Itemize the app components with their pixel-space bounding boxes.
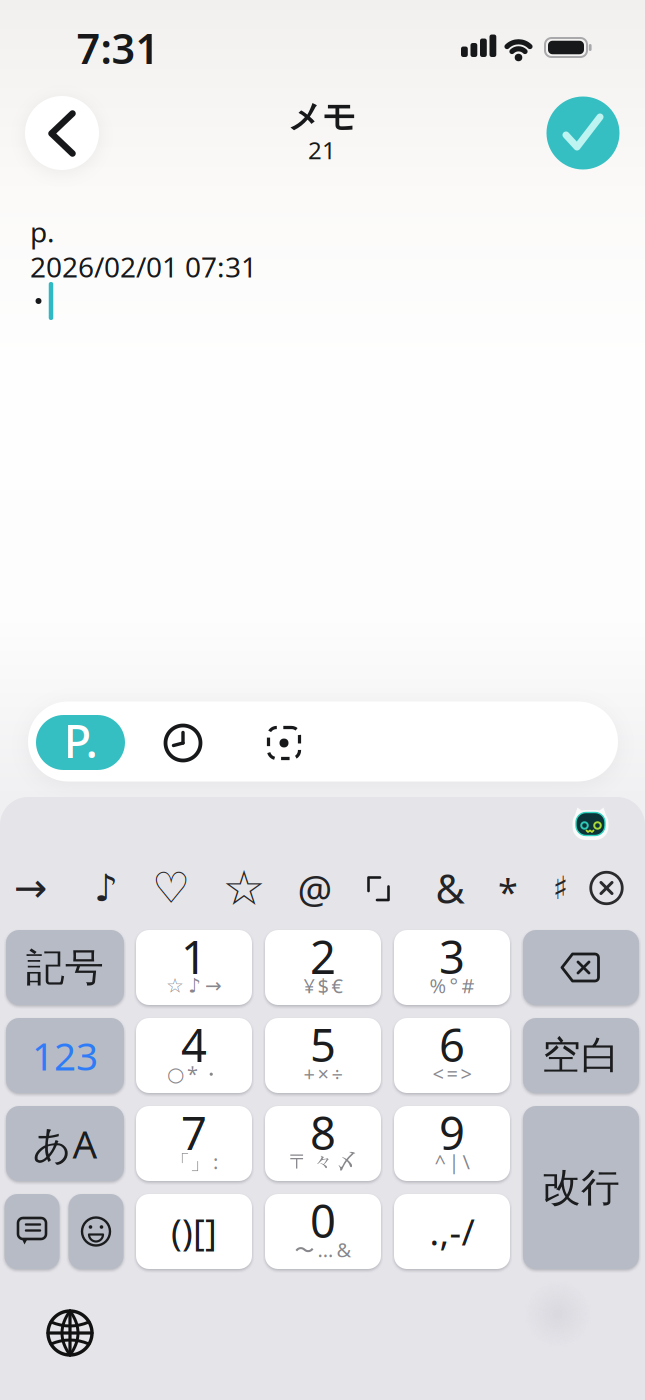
staticText: ☆ ♪ → [166,974,222,997]
button[interactable]: .,-/ [394,1194,510,1269]
button[interactable]: Scan [262,721,306,765]
button[interactable]: ♡ [149,866,193,910]
button[interactable]: * [486,869,530,913]
staticText: ¥ $ € [303,972,342,999]
button[interactable]: History [161,721,205,765]
button[interactable]: 3 [394,930,510,1005]
staticText: 6 [439,1014,465,1075]
staticText: 改行 [542,1164,620,1211]
staticText: p. [30,213,55,250]
staticText: 123 [32,1030,98,1081]
staticText: 「」 : [170,1148,218,1175]
button[interactable]: ()[] [136,1194,252,1269]
staticText: ♯ [552,870,567,906]
staticText: ○ * ・ [167,1060,221,1087]
staticText: .,-/ [429,1208,474,1255]
button[interactable]: Done [546,96,619,169]
button[interactable]: @ [293,866,337,910]
staticText: 〜 … & [294,1236,351,1263]
staticText: 記号 [26,944,104,991]
button[interactable]: 1 [136,930,252,1005]
staticText: ☆ [222,861,265,915]
staticText: 2026/02/01 07:31 [30,248,257,285]
staticText: + × ÷ [303,1060,342,1087]
button[interactable]: Emoji [68,1194,123,1269]
button[interactable]: 4 [136,1018,252,1093]
button[interactable]: ♯ [538,866,582,910]
staticText: < = > [432,1060,471,1087]
button[interactable]: Delete [523,930,639,1005]
staticText: ♪ [94,867,118,909]
button[interactable]: 空白 [523,1018,639,1093]
staticText: ()[] [171,1208,217,1255]
staticText: 3 [439,926,465,987]
button[interactable]: 2 [265,930,381,1005]
staticText: あA [32,1118,97,1169]
button[interactable]: 改行 [523,1106,639,1269]
button[interactable]: Clipboard [4,1194,59,1269]
staticText: 5 [310,1014,336,1075]
button[interactable]: ♪ [84,866,128,910]
staticText: 7 [181,1102,207,1163]
button[interactable]: P. [36,715,125,770]
button[interactable]: あA [6,1106,124,1181]
button[interactable]: Back [25,96,99,170]
staticText: 9 [439,1102,465,1163]
staticText: 1 [181,926,207,987]
button[interactable]: Close [586,868,626,908]
button[interactable]: 8 [265,1106,381,1181]
button[interactable]: 9 [394,1106,510,1181]
button[interactable]: 7 [136,1106,252,1181]
staticText: 7:31 [76,21,159,75]
staticText: & [435,861,464,914]
staticText: 2 [310,926,336,987]
button[interactable]: & [428,866,472,910]
button[interactable]: → [9,866,53,910]
staticText: メモ [288,96,356,137]
staticText: 空白 [542,1032,620,1079]
staticText: 0 [310,1190,336,1251]
staticText: ^ | \ [434,1148,469,1175]
staticText: 21 [308,134,336,166]
staticText: ♡ [152,864,190,912]
staticText: 8 [310,1102,336,1163]
button[interactable]: ☆ [222,866,266,910]
staticText: P. [63,710,97,771]
staticText: @ [297,862,332,914]
staticText: → [14,865,48,911]
button[interactable]: 記号 [6,930,124,1005]
button[interactable]: Next keyboard [42,1305,98,1361]
staticText: 〒 々 〆 [289,1149,357,1174]
staticText: * [498,867,518,915]
staticText: % ° # [429,972,474,999]
button[interactable]: 0 [265,1194,381,1269]
button[interactable]: 123 [6,1018,124,1093]
button[interactable]: 6 [394,1018,510,1093]
button[interactable]: 5 [265,1018,381,1093]
staticText: 4 [181,1014,207,1075]
